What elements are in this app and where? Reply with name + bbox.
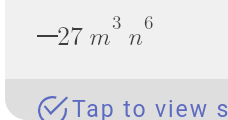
staticText: Tap to view s [72,96,228,120]
staticText: n [127,16,142,53]
staticText: 6 [144,8,154,35]
staticText: m [88,16,110,53]
button[interactable] [5,79,228,120]
staticText: 27 [57,16,84,53]
other: View solution steps [38,96,67,120]
staticText: 3 [112,8,122,35]
